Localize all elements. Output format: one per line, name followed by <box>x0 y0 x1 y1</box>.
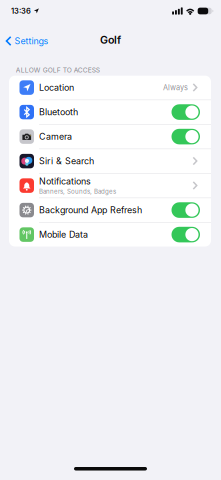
staticText: Mobile Data <box>39 229 88 240</box>
staticText: Always <box>163 83 188 92</box>
staticText: Camera <box>39 131 72 142</box>
button[interactable]: Camera <box>171 129 200 144</box>
button[interactable]: Location <box>9 76 211 100</box>
staticText: 13:36 <box>11 6 31 16</box>
button[interactable]: Back to Settings <box>0 36 48 46</box>
button[interactable]: Bluetooth <box>171 104 200 120</box>
staticText: Location <box>39 82 74 93</box>
staticText: Bluetooth <box>39 107 78 117</box>
button[interactable]: Background App Refresh <box>171 202 200 218</box>
staticText: Golf <box>100 33 121 46</box>
staticText: ALLOW GOLF TO ACCESS <box>16 66 100 74</box>
staticText: Banners, Sounds, Badges <box>39 188 116 195</box>
staticText: Settings <box>14 36 48 46</box>
staticText: Siri & Search <box>39 156 94 166</box>
staticText: Background App Refresh <box>39 205 142 215</box>
button[interactable]: Mobile Data <box>171 227 200 242</box>
button[interactable]: Siri & Search <box>9 149 211 173</box>
button[interactable]: Notifications <box>9 174 211 198</box>
staticText: Notifications <box>39 176 91 187</box>
